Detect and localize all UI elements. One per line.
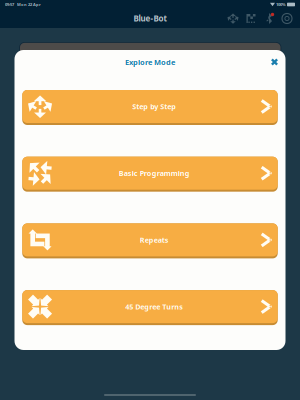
button[interactable]: Close <box>263 53 285 71</box>
staticText: Mon 22 Apr <box>14 2 41 7</box>
staticText: Step by Step <box>132 102 176 111</box>
staticText: Basic Programming <box>119 168 190 178</box>
button[interactable]: Settings <box>278 10 296 26</box>
staticText: 100% <box>275 2 287 7</box>
staticText: 45 Degree Turns <box>125 302 183 311</box>
button[interactable]: Repeats <box>22 223 278 258</box>
button[interactable]: Basic Programming <box>22 157 278 192</box>
staticText: Blue-Bot <box>133 13 166 24</box>
button[interactable]: Directions <box>224 10 242 26</box>
button[interactable]: Step by Step <box>22 90 278 125</box>
button[interactable]: Goals <box>242 10 260 26</box>
button[interactable]: Connect <box>260 10 278 26</box>
staticText: Explore Mode <box>125 57 175 67</box>
button[interactable]: 45 Degree Turns <box>22 290 278 325</box>
staticText: Repeats <box>140 235 169 245</box>
staticText: 09:57 <box>5 2 14 7</box>
